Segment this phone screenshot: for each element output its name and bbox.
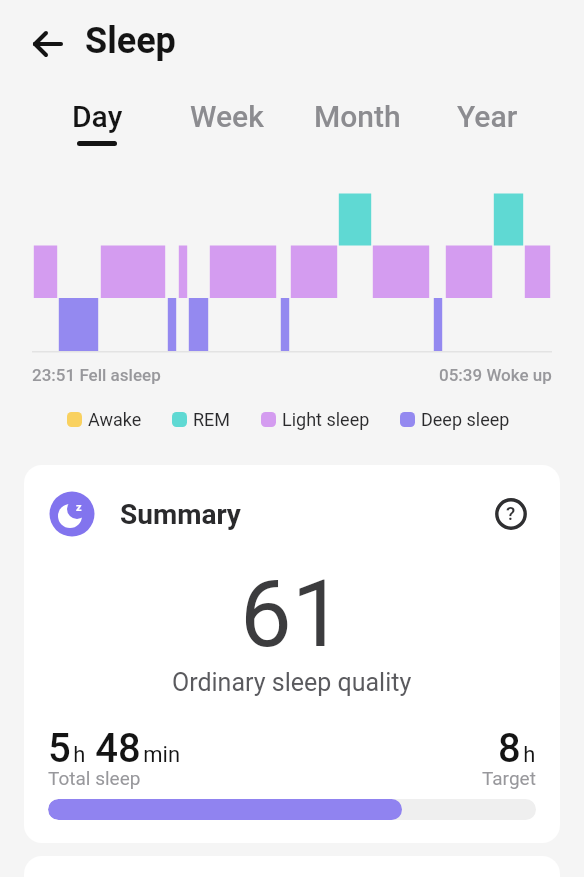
button[interactable]: Year [422, 99, 552, 146]
button[interactable] [30, 26, 66, 62]
staticText: 23:51 Fell asleep [32, 365, 161, 385]
staticText: Sleep [85, 20, 176, 62]
staticText: Year [457, 99, 518, 134]
staticText: 8 h [498, 725, 536, 772]
staticText: 5 h 48 min [48, 725, 181, 772]
button[interactable]: Day [32, 99, 162, 146]
staticText: ? [506, 502, 516, 524]
staticText: Target [482, 767, 536, 789]
staticText: Summary [120, 498, 241, 531]
staticText: Light sleep [282, 409, 370, 430]
staticText: 61 [240, 561, 344, 661]
staticText: Total sleep [48, 767, 141, 789]
staticText: z [76, 501, 82, 514]
button[interactable]: Week [162, 99, 292, 146]
staticText: Day [72, 99, 123, 134]
button[interactable]: ? [495, 498, 527, 530]
button[interactable]: Month [292, 99, 422, 146]
staticText: Awake [88, 409, 142, 430]
staticText: Week [190, 99, 264, 134]
staticText: 05:39 Woke up [439, 365, 552, 385]
staticText: Ordinary sleep quality [172, 668, 412, 697]
staticText: REM [193, 409, 231, 430]
staticText: Deep sleep [421, 409, 510, 430]
staticText: Month [314, 99, 401, 134]
